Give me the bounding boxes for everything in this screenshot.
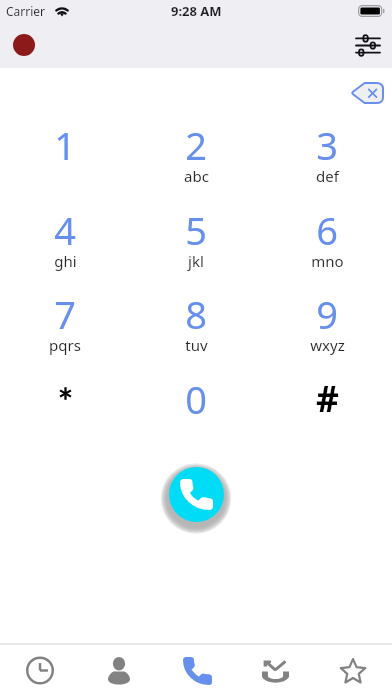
staticText: 4 (54, 204, 76, 256)
staticText: 8 (185, 288, 207, 340)
staticText: Carrier (6, 3, 46, 19)
button[interactable]: Call (169, 467, 224, 522)
button[interactable]: 2 (151, 113, 241, 183)
button[interactable]: 5 (151, 198, 241, 268)
staticText: # (316, 374, 339, 422)
button[interactable]: # (282, 367, 372, 437)
button[interactable]: 1 (20, 113, 110, 183)
button[interactable] (20, 367, 110, 437)
staticText: 9:28 AM (171, 2, 222, 20)
button[interactable]: 6 (282, 198, 372, 268)
staticText: mno (311, 251, 344, 271)
staticText: 3 (316, 119, 338, 171)
button[interactable]: 0 (151, 367, 241, 437)
button[interactable]: Keypad (158, 645, 236, 696)
button[interactable]: Favorites (314, 645, 392, 696)
button[interactable]: Contacts (79, 645, 158, 696)
staticText: jkl (188, 251, 204, 271)
staticText: tuv (185, 335, 208, 355)
staticText: abc (184, 166, 209, 186)
button[interactable]: 7 (20, 282, 110, 352)
staticText: 7 (54, 288, 76, 340)
button[interactable]: Backspace (351, 82, 384, 104)
button[interactable]: Voicemail (236, 645, 314, 696)
button[interactable]: 4 (20, 198, 110, 268)
staticText: 5 (185, 204, 207, 256)
staticText: 1 (54, 119, 76, 171)
button[interactable]: 3 (282, 113, 372, 183)
staticText: wxyz (310, 335, 345, 355)
button[interactable]: Settings (350, 28, 384, 62)
staticText: 2 (185, 119, 207, 171)
button[interactable]: 8 (151, 282, 241, 352)
staticText: pqrs (49, 335, 81, 355)
staticText: ghi (54, 251, 77, 271)
staticText: def (316, 166, 339, 186)
staticText: 9 (316, 288, 338, 340)
staticText: 6 (316, 204, 338, 256)
staticText: 0 (185, 373, 207, 425)
button[interactable]: Recents (0, 645, 79, 696)
button[interactable]: Record (13, 34, 35, 56)
button[interactable]: 9 (282, 282, 372, 352)
